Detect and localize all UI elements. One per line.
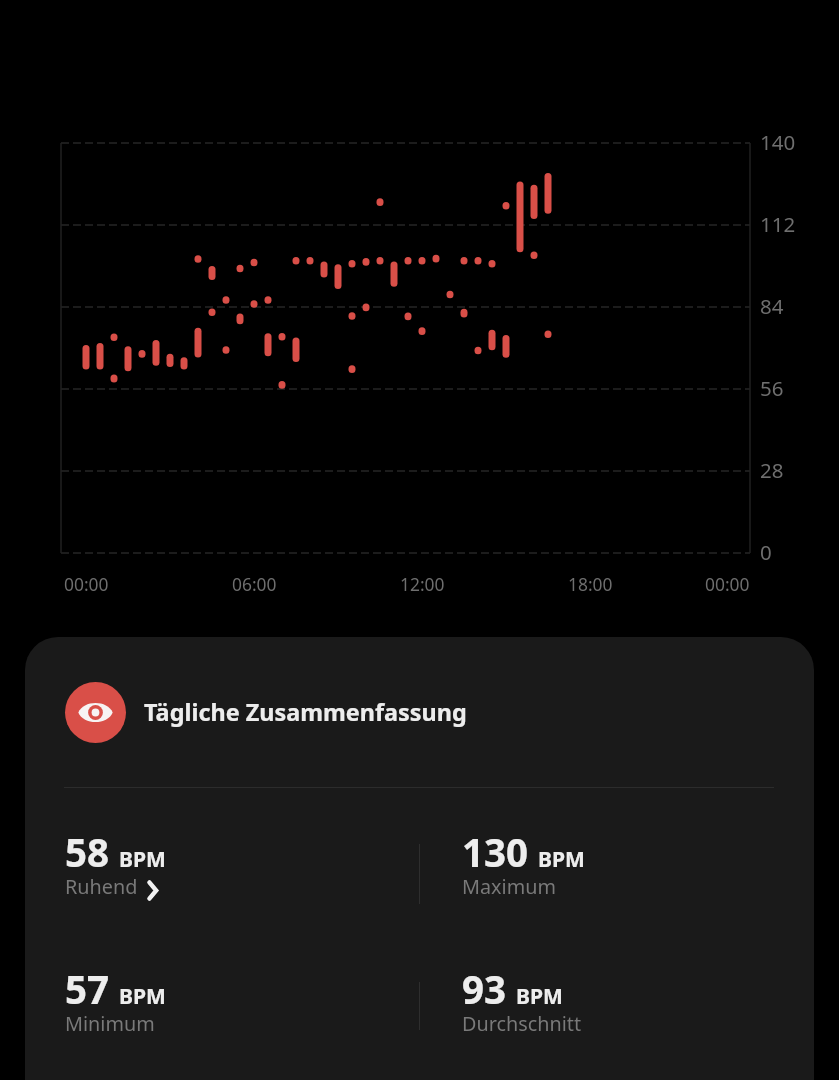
staticText: Ruhend [65,873,138,900]
button[interactable]: 57 [65,963,395,1043]
staticText: 112 [760,210,796,238]
staticText: 06:00 [232,572,277,596]
button[interactable]: 58 [65,826,395,906]
staticText: 18:00 [568,572,613,596]
staticText: 00:00 [64,572,109,596]
staticText: Maximum [462,873,556,900]
staticText: BPM [516,982,563,1011]
staticText: 28 [760,456,784,484]
staticText: 93 [462,963,507,1015]
staticText: Tägliche Zusammenfassung [144,696,467,728]
other: Details anzeigen [147,880,160,901]
staticText: 84 [760,292,784,320]
button[interactable]: 93 [462,963,792,1043]
staticText: 130 [462,826,529,878]
staticText: 12:00 [400,572,445,596]
staticText: BPM [538,845,585,874]
button[interactable]: Tagesuebersicht [25,681,814,743]
staticText: BPM [119,845,166,874]
staticText: 00:00 [705,572,750,596]
staticText: 0 [760,538,772,566]
button[interactable]: 130 [462,826,792,906]
staticText: 140 [760,128,796,156]
staticText: 58 [65,826,110,878]
staticText: BPM [119,982,166,1011]
staticText: 57 [65,963,110,1015]
staticText: Minimum [65,1010,155,1037]
other: Tagesuebersicht [65,682,126,743]
staticText: Durchschnitt [462,1010,582,1037]
staticText: 56 [760,374,784,402]
